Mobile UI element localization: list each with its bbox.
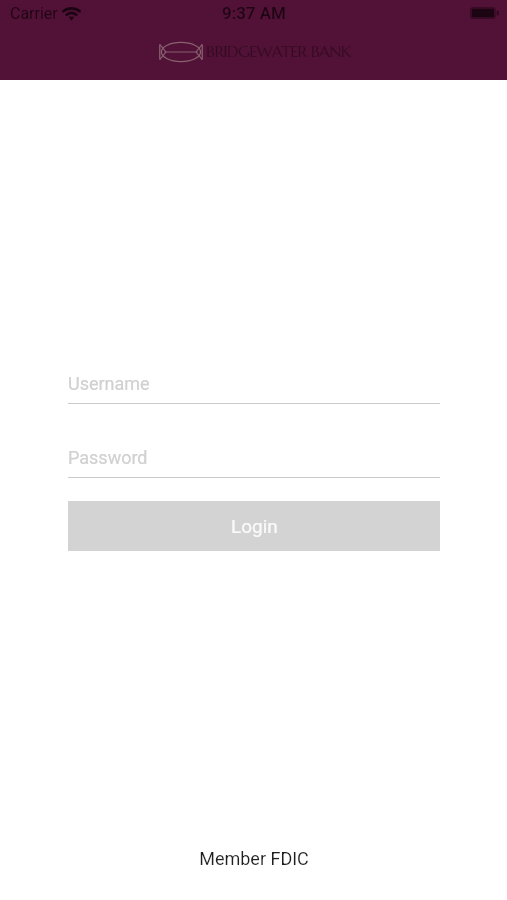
button[interactable]: Password bbox=[68, 447, 440, 478]
button[interactable]: Login bbox=[68, 501, 440, 551]
staticText: BRIDGEWATER BANK bbox=[206, 41, 351, 61]
staticText: Member FDIC bbox=[199, 848, 309, 869]
button[interactable]: Username bbox=[68, 373, 440, 404]
staticText: Carrier bbox=[10, 4, 58, 23]
staticText: 9:37 AM bbox=[222, 3, 286, 23]
other: Wi-Fi signal bbox=[62, 7, 81, 21]
staticText: Username bbox=[68, 373, 150, 394]
staticText: Login bbox=[231, 515, 278, 537]
staticText: Password bbox=[68, 447, 148, 468]
other: Battery full bbox=[470, 7, 499, 19]
